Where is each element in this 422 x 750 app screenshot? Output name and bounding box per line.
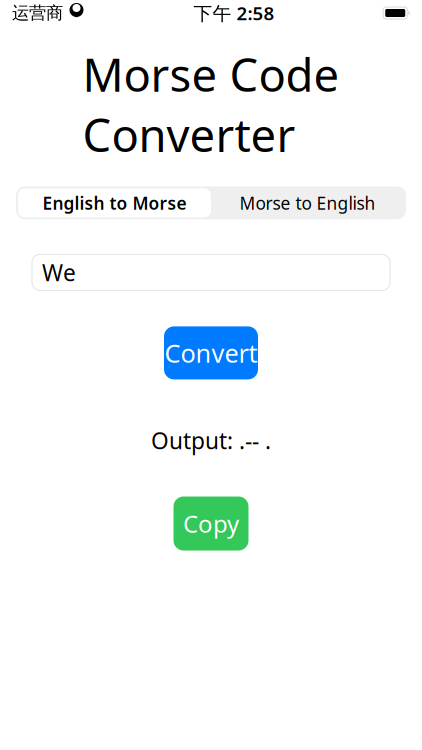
button[interactable]: English to Morse	[18, 188, 211, 217]
staticText: 下午 2:58	[193, 1, 274, 25]
staticText: 运营商	[12, 2, 63, 24]
staticText: English to Morse	[42, 191, 186, 214]
button[interactable]: Morse to English	[211, 188, 404, 217]
button[interactable]: Copy	[173, 496, 248, 550]
staticText: Convert	[164, 336, 257, 370]
button[interactable]: Convert	[164, 326, 258, 379]
staticText: Output: .-- .	[151, 425, 271, 455]
staticText: Morse to English	[239, 191, 375, 214]
staticText: Morse Code Converter	[82, 44, 339, 164]
staticText: Copy	[183, 508, 239, 539]
staticText: We	[42, 257, 76, 287]
